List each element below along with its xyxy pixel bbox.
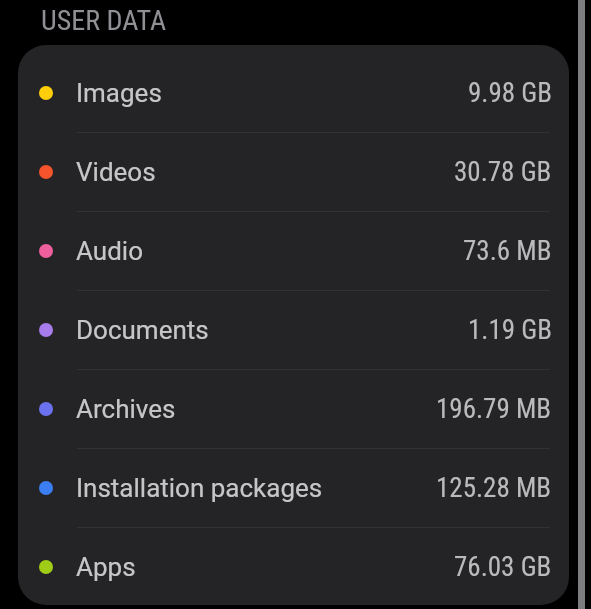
- button[interactable]: Images: [18, 54, 569, 132]
- staticText: Installation packages: [76, 473, 323, 503]
- staticText: Apps: [76, 552, 136, 582]
- staticText: USER DATA: [41, 4, 167, 37]
- button[interactable]: Archives: [18, 370, 569, 448]
- staticText: 125.28 MB: [436, 472, 552, 504]
- staticText: Images: [76, 78, 162, 108]
- button[interactable]: Videos: [18, 133, 569, 211]
- staticText: 30.78 GB: [454, 156, 552, 188]
- staticText: 196.79 MB: [436, 393, 552, 425]
- staticText: 73.6 MB: [463, 235, 552, 267]
- button[interactable]: Documents: [18, 291, 569, 369]
- button[interactable]: Apps: [18, 528, 569, 605]
- button[interactable]: Installation packages: [18, 449, 569, 527]
- staticText: Documents: [76, 315, 209, 345]
- button[interactable]: Audio: [18, 212, 569, 290]
- staticText: 1.19 GB: [468, 314, 552, 346]
- staticText: 9.98 GB: [468, 77, 552, 109]
- staticText: Videos: [76, 157, 156, 187]
- staticText: 76.03 GB: [454, 551, 552, 583]
- staticText: Archives: [76, 394, 176, 424]
- staticText: Audio: [76, 236, 143, 266]
